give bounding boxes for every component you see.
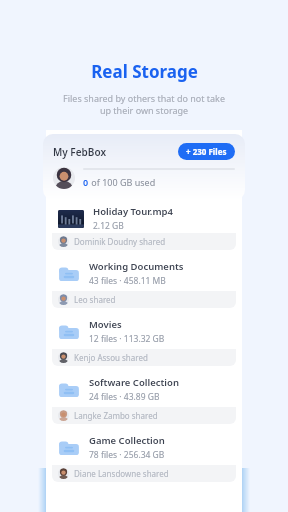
- staticText: My FebBox: [53, 145, 107, 159]
- button[interactable]: Video thumbnail: [52, 204, 236, 250]
- other: Avatar: [58, 294, 69, 305]
- staticText: Dominik Doudny shared: [74, 236, 166, 247]
- other: Avatar: [58, 352, 69, 363]
- other: Avatar: [58, 468, 69, 479]
- staticText: Software Collection: [89, 376, 179, 389]
- other: Video thumbnail: [58, 210, 84, 228]
- other: Folder: [58, 263, 80, 285]
- staticText: of 100 GB used: [89, 176, 156, 188]
- staticText: 78 files · 256.34 GB: [89, 449, 165, 461]
- staticText: Working Documents: [89, 260, 184, 273]
- staticText: Movies: [89, 318, 122, 331]
- button[interactable]: Folder: [52, 314, 236, 366]
- staticText: Leo shared: [74, 294, 116, 305]
- staticText: 43 files · 458.11 MB: [89, 275, 166, 287]
- other: Avatar: [58, 410, 69, 421]
- staticText: Game Collection: [89, 434, 165, 447]
- other: Folder: [58, 379, 80, 401]
- other: Avatar: [53, 167, 75, 189]
- staticText: Holiday Tour.mp4: [93, 205, 173, 218]
- staticText: + 230 Files: [186, 146, 227, 157]
- staticText: 12 files · 113.32 GB: [89, 333, 165, 345]
- staticText: Langke Zambo shared: [74, 410, 158, 421]
- button[interactable]: My FebBox: [43, 134, 245, 200]
- staticText: 2.12 GB: [93, 220, 124, 232]
- other: Folder: [58, 321, 80, 343]
- staticText: Kenjo Assou shared: [74, 352, 148, 363]
- button[interactable]: Folder: [52, 256, 236, 308]
- staticText: 24 files · 43.89 GB: [89, 391, 160, 403]
- button[interactable]: Folder: [52, 372, 236, 424]
- staticText: Diane Lansdowne shared: [74, 468, 169, 479]
- button[interactable]: Folder: [52, 430, 236, 482]
- staticText: Real Storage: [91, 60, 198, 83]
- other: Folder: [58, 437, 80, 459]
- other: Avatar: [58, 236, 69, 247]
- staticText: 0: [83, 176, 89, 188]
- staticText: Files shared by others that do not take …: [63, 92, 225, 117]
- button[interactable]: + 230 Files: [178, 143, 235, 160]
